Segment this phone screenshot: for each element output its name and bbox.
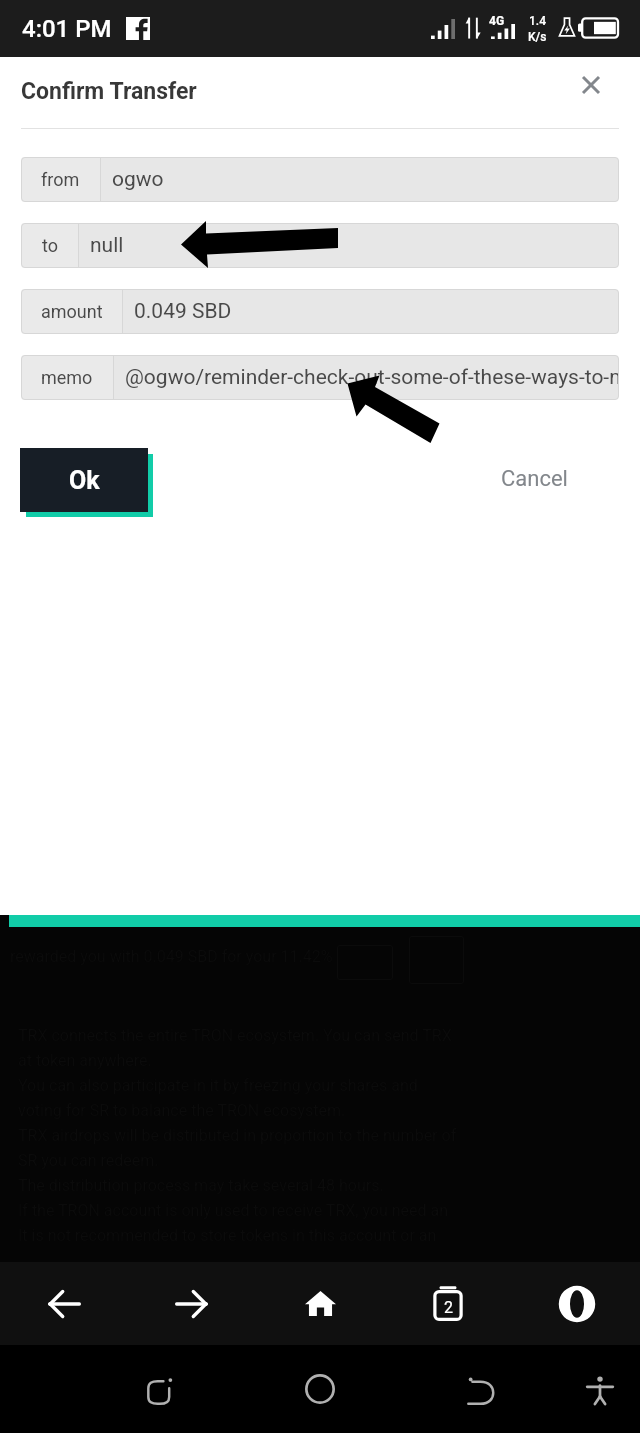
button[interactable]: Back bbox=[32, 1262, 96, 1345]
staticText: Cancel bbox=[501, 466, 568, 492]
staticText: from bbox=[41, 169, 80, 190]
staticText: 4G bbox=[489, 14, 505, 28]
staticText: 4:01 PM bbox=[22, 15, 112, 43]
button[interactable]: to bbox=[21, 223, 619, 268]
button[interactable]: from bbox=[21, 157, 619, 202]
button[interactable]: Forward bbox=[160, 1262, 224, 1345]
staticText: ogwo bbox=[112, 167, 164, 192]
staticText: Confirm Transfer bbox=[21, 78, 197, 105]
button[interactable]: Close bbox=[569, 63, 613, 107]
button[interactable]: Home bbox=[292, 1361, 348, 1417]
staticText: 0.049 SBD bbox=[134, 299, 232, 324]
button[interactable]: Ok bbox=[20, 448, 148, 512]
staticText: @ogwo/reminder-check-out-some-of-these-w… bbox=[125, 365, 619, 390]
staticText: 1.4 bbox=[529, 14, 546, 28]
staticText: to bbox=[42, 235, 58, 256]
button[interactable]: Recents bbox=[132, 1362, 188, 1418]
button[interactable]: Back bbox=[452, 1362, 508, 1418]
button[interactable]: Opera menu bbox=[545, 1262, 609, 1345]
button[interactable]: Accessibility bbox=[572, 1362, 628, 1418]
staticText: memo bbox=[41, 367, 93, 388]
staticText: Ok bbox=[69, 466, 100, 495]
staticText: null bbox=[90, 233, 124, 258]
button[interactable]: memo bbox=[21, 355, 619, 400]
button[interactable]: amount bbox=[21, 289, 619, 334]
staticText: amount bbox=[41, 301, 103, 322]
staticText: 2 bbox=[444, 1298, 453, 1317]
staticText: K/s bbox=[528, 30, 547, 44]
button[interactable]: Cancel bbox=[487, 458, 582, 500]
button[interactable]: Tabs bbox=[416, 1262, 480, 1345]
button[interactable]: Home bbox=[288, 1262, 352, 1345]
